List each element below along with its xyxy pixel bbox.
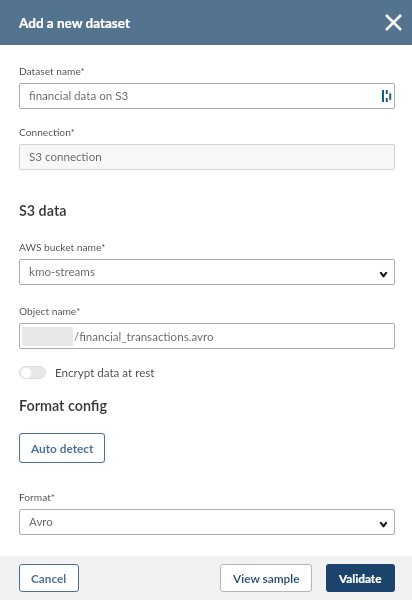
button[interactable]: Close dialog — [378, 7, 408, 37]
staticText: financial data on S3 — [29, 89, 129, 103]
button[interactable]: Cancel — [19, 564, 79, 592]
button[interactable]: kmo-streams — [19, 259, 395, 285]
staticText: Auto detect — [31, 441, 94, 455]
staticText: Format config — [19, 397, 107, 414]
staticText: Add a new dataset — [19, 15, 130, 31]
button[interactable]: View sample — [220, 564, 312, 592]
button[interactable]: Auto detect — [19, 433, 105, 463]
button[interactable]: S3 connection — [19, 144, 395, 170]
button[interactable]: Validate — [326, 564, 395, 592]
staticText: Dataset name* — [19, 65, 85, 77]
button[interactable]: Avro — [19, 509, 395, 535]
staticText: Avro — [29, 515, 53, 529]
button[interactable]: /financial_transactions.avro — [19, 323, 395, 349]
staticText: Connection* — [19, 126, 75, 138]
button[interactable]: Encrypt data at rest — [19, 364, 155, 381]
staticText: kmo-streams — [29, 265, 95, 279]
staticText: S3 data — [19, 202, 67, 219]
staticText: S3 connection — [29, 150, 102, 164]
staticText: Cancel — [31, 571, 67, 585]
staticText: Format* — [19, 491, 56, 503]
staticText: AWS bucket name* — [19, 241, 106, 253]
staticText: /financial_transactions.avro — [74, 330, 214, 344]
staticText: Encrypt data at rest — [55, 366, 155, 380]
button[interactable]: financial data on S3 — [19, 83, 395, 109]
staticText: Object name* — [19, 305, 81, 317]
staticText: View sample — [233, 571, 300, 585]
staticText: Validate — [339, 571, 382, 585]
